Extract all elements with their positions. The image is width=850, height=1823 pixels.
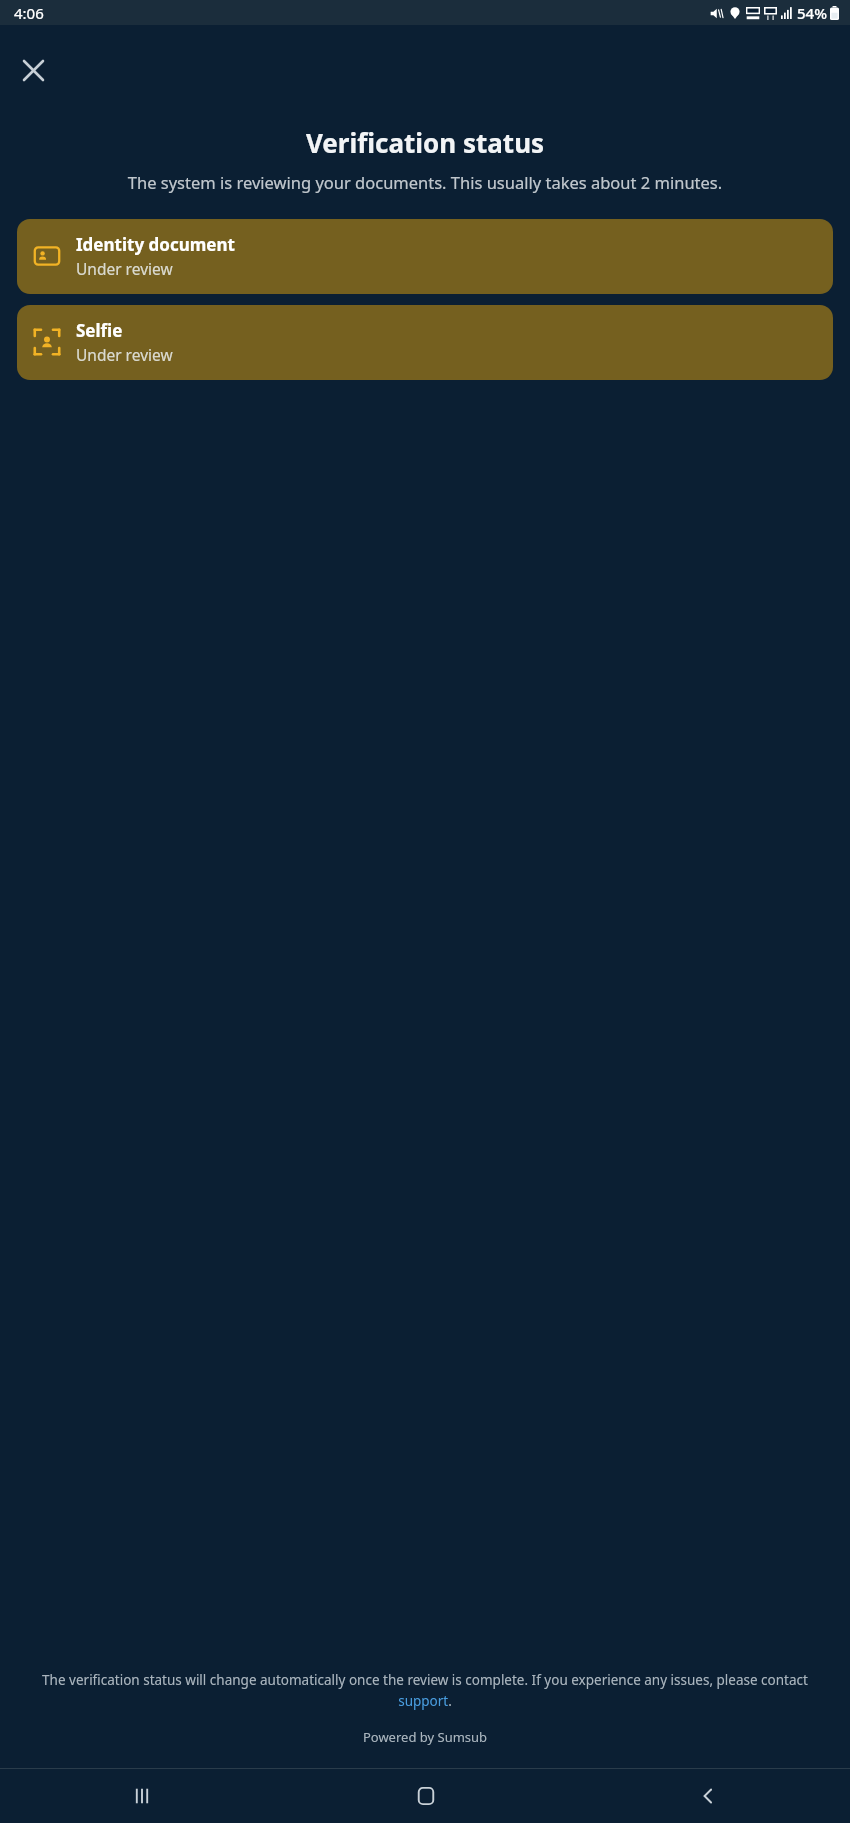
button[interactable]: Selfie [17,305,833,380]
staticText: Verification status [0,125,850,160]
staticText: 54% [797,3,827,23]
button[interactable]: Home [284,1769,567,1823]
button[interactable]: Identity document [17,219,833,294]
staticText: Under review [76,344,173,365]
staticText: Under review [76,258,173,279]
staticText: 4:06 [14,3,44,23]
button[interactable]: Close [11,48,55,92]
staticText: Powered by Sumsub [0,1728,850,1746]
staticText: The verification status will change auto… [32,1671,818,1710]
button[interactable]: Back [567,1769,850,1823]
staticText: Identity document [76,233,235,256]
staticText: Selfie [76,319,123,342]
staticText: The system is reviewing your documents. … [22,171,828,193]
button[interactable]: Recents [0,1769,284,1823]
